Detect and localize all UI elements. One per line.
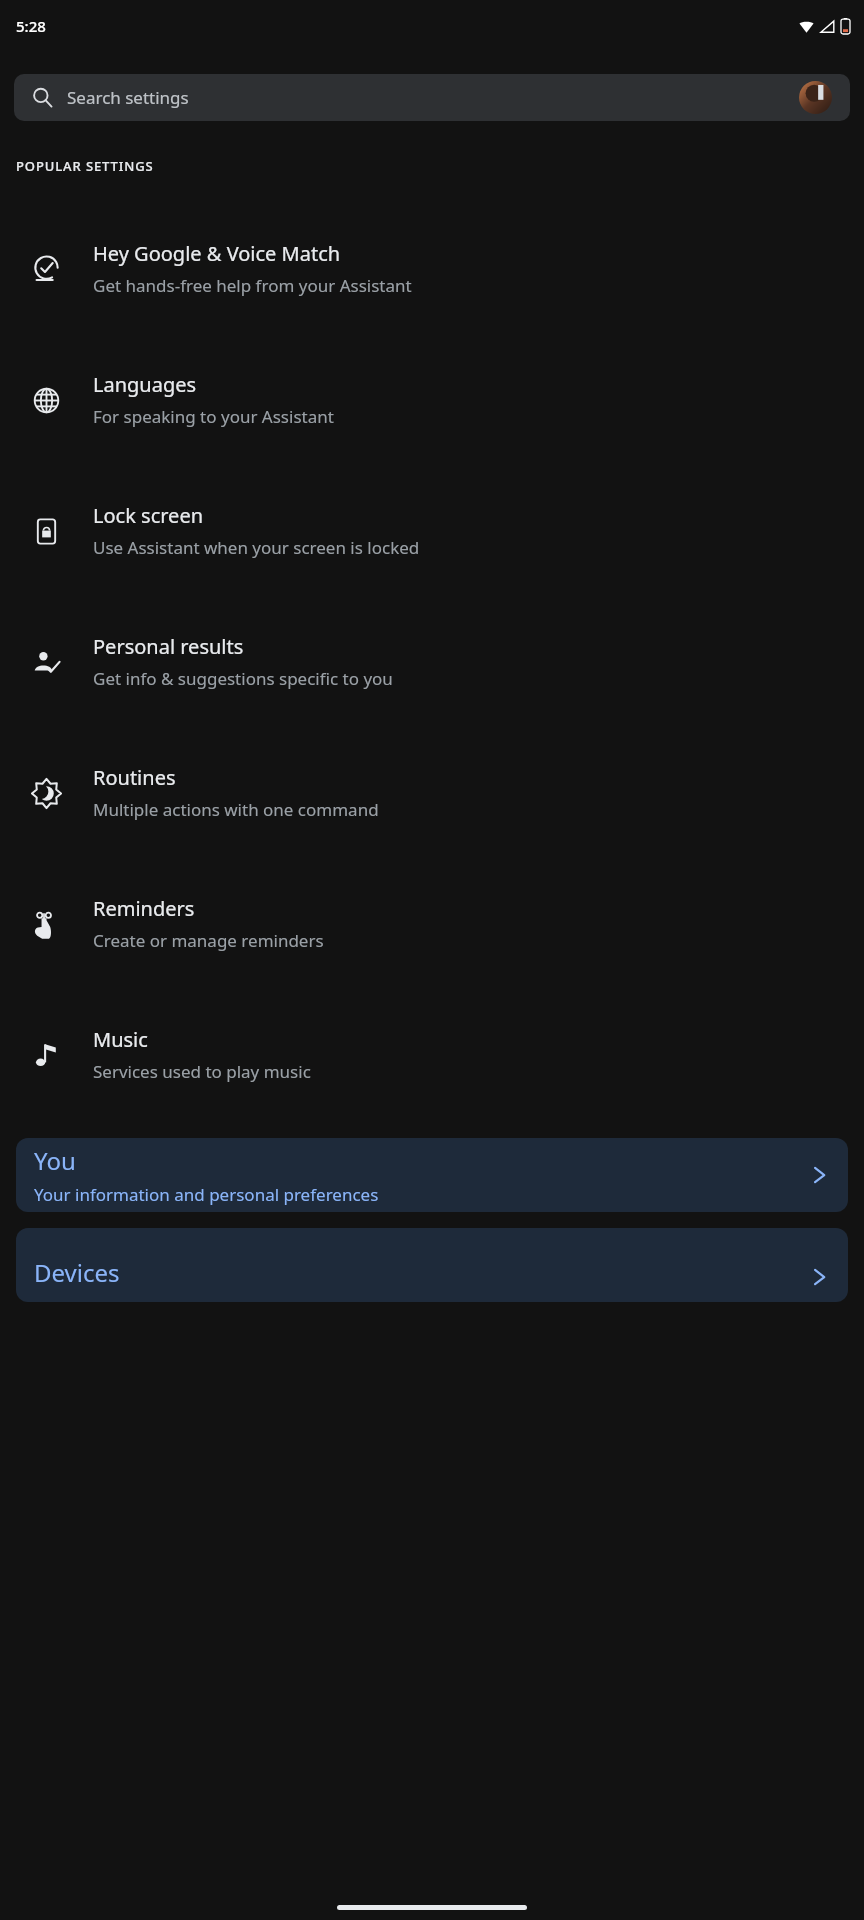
button[interactable]: Search settings xyxy=(14,74,850,121)
button[interactable]: Languages xyxy=(0,334,864,465)
staticText: Languages xyxy=(93,371,197,398)
staticText: You xyxy=(34,1144,76,1177)
button[interactable]: Account xyxy=(799,81,832,114)
button[interactable]: Personal results xyxy=(0,596,864,727)
staticText: Routines xyxy=(93,764,176,791)
staticText: Hey Google & Voice Match xyxy=(93,240,341,267)
button[interactable]: Hey Google & Voice Match xyxy=(0,203,864,334)
staticText: Use Assistant when your screen is locked xyxy=(93,536,420,559)
staticText: Your information and personal preference… xyxy=(34,1183,379,1206)
button[interactable]: You xyxy=(16,1138,848,1212)
staticText: Services used to play music xyxy=(93,1060,311,1083)
staticText: Get info & suggestions specific to you xyxy=(93,667,393,690)
staticText: Lock screen xyxy=(93,502,204,529)
staticText: Music xyxy=(93,1026,148,1053)
staticText: Devices xyxy=(34,1256,120,1289)
staticText: POPULAR SETTINGS xyxy=(16,157,154,175)
staticText: Multiple actions with one command xyxy=(93,798,379,821)
button[interactable]: Reminders xyxy=(0,858,864,989)
staticText: For speaking to your Assistant xyxy=(93,405,334,428)
staticText: Personal results xyxy=(93,633,244,660)
staticText: Search settings xyxy=(67,86,189,109)
button[interactable]: Lock screen xyxy=(0,465,864,596)
staticText: Create or manage reminders xyxy=(93,929,324,952)
button[interactable]: Devices xyxy=(16,1228,848,1302)
button[interactable]: Music xyxy=(0,989,864,1120)
staticText: 5:28 xyxy=(16,16,46,36)
staticText: Reminders xyxy=(93,895,195,922)
staticText: Get hands-free help from your Assistant xyxy=(93,274,412,297)
button[interactable]: Routines xyxy=(0,727,864,858)
